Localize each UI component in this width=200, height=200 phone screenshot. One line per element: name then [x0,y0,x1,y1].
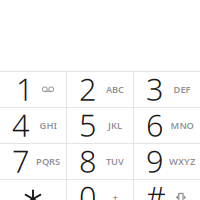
button[interactable]: 1 [0,72,66,107]
staticText: # [146,176,166,200]
staticText: DEF [173,83,190,96]
staticText: 7 [12,140,30,181]
button[interactable]: 2 [67,72,133,107]
staticText: 9 [146,140,164,181]
staticText: 0 [79,176,97,200]
staticText: 8 [79,140,97,181]
staticText: 1 [16,68,34,109]
staticText: GHI [39,119,56,132]
staticText: TUV [106,155,124,168]
staticText: ABC [106,83,124,96]
button[interactable]: 4 [0,108,66,143]
button[interactable] [0,180,66,200]
staticText: JKL [108,119,122,132]
button[interactable]: 0 [67,180,133,200]
button[interactable]: 7 [0,144,66,179]
staticText: 5 [79,104,97,145]
button[interactable]: 9 [134,144,200,179]
staticText: + [112,191,117,200]
staticText: MNO [170,119,193,132]
staticText: 3 [146,68,164,109]
button[interactable]: 8 [67,144,133,179]
button[interactable]: 6 [134,108,200,143]
staticText: 6 [146,104,164,145]
staticText: 2 [79,68,97,109]
staticText: 4 [12,104,30,145]
staticText: PQRS [36,155,60,168]
button[interactable]: 3 [134,72,200,107]
button[interactable]: 5 [67,108,133,143]
button[interactable]: # [134,180,200,200]
staticText: WXYZ [169,155,195,168]
